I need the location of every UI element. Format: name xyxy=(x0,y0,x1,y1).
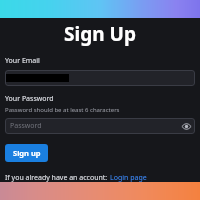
staticText: Password should be at least 6 characters xyxy=(5,106,120,114)
button[interactable]: Sign up xyxy=(5,144,48,162)
staticText: If you already have an account: xyxy=(5,173,110,183)
button[interactable]: Show password xyxy=(180,120,192,132)
staticText: Your Password xyxy=(5,94,54,104)
button[interactable]: Login page xyxy=(110,173,147,183)
staticText: Login page xyxy=(110,173,147,183)
staticText: Password xyxy=(10,121,42,131)
staticText: Sign up xyxy=(13,148,41,158)
staticText: Your Email xyxy=(5,56,40,66)
button[interactable] xyxy=(5,70,195,86)
button[interactable]: Password xyxy=(5,118,195,134)
staticText: Sign Up xyxy=(5,21,195,47)
